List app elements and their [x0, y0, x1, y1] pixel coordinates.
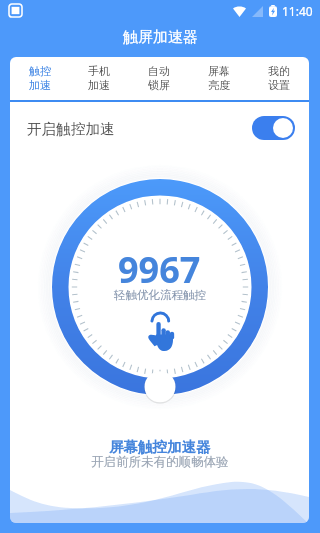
staticText: 设置 [268, 78, 290, 92]
staticText: 屏幕触控加速器 [109, 438, 211, 456]
staticText: 锁屏 [148, 78, 170, 92]
button[interactable]: 自动 [129, 57, 189, 100]
button[interactable]: 手机 [69, 57, 129, 100]
staticText: 开启触控加速 [27, 120, 115, 138]
staticText: 我的 [268, 64, 290, 78]
button[interactable]: 触控 [10, 57, 69, 100]
staticText: 加速 [88, 78, 110, 92]
staticText: 开启前所未有的顺畅体验 [91, 454, 229, 470]
staticText: 亮度 [208, 78, 230, 92]
button[interactable]: 我的 [249, 57, 309, 100]
staticText: 11:40 [282, 3, 313, 19]
staticText: 屏幕 [208, 64, 230, 78]
other: 触控 [147, 312, 175, 351]
staticText: 轻触优化流程触控 [114, 288, 206, 302]
staticText: 触屏加速器 [123, 28, 198, 47]
button[interactable]: 开启触控加速 [252, 116, 295, 140]
button[interactable]: 屏幕 [189, 57, 249, 100]
staticText: 加速 [29, 78, 51, 92]
staticText: 手机 [88, 64, 110, 78]
staticText: 触控 [29, 64, 51, 78]
staticText: 9967 [118, 245, 201, 294]
staticText: 自动 [148, 64, 170, 78]
